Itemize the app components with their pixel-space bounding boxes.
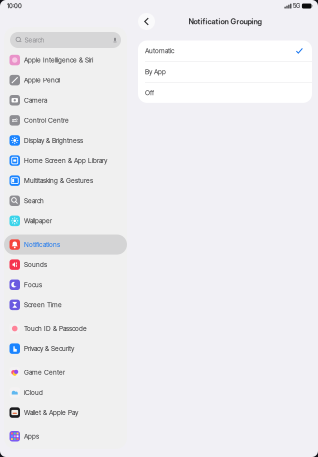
staticText: Game Center: [24, 368, 65, 376]
staticText: Touch ID & Passcode: [24, 324, 87, 333]
button[interactable]: Camera: [4, 90, 127, 110]
button[interactable]: Wallet & Apple Pay: [4, 402, 127, 423]
staticText: Search: [24, 197, 44, 205]
staticText: 5G: [293, 2, 300, 9]
staticText: Multitasking & Gestures: [24, 177, 93, 185]
staticText: Apps: [24, 432, 39, 440]
staticText: iCloud: [24, 388, 43, 396]
button[interactable]: Automatic: [138, 40, 312, 62]
button[interactable]: Wallpaper: [4, 211, 127, 231]
button[interactable]: Off: [138, 83, 312, 103]
button[interactable]: Control Centre: [4, 110, 127, 130]
staticText: Display & Brightness: [24, 136, 83, 144]
button[interactable]: Apple Pencil: [4, 70, 127, 90]
staticText: Automatic: [145, 47, 174, 55]
button[interactable]: Focus: [4, 275, 127, 295]
button[interactable]: Privacy & Security: [4, 339, 127, 359]
staticText: Camera: [24, 96, 47, 104]
button[interactable]: Back: [138, 13, 155, 30]
staticText: Control Centre: [24, 116, 69, 124]
staticText: Sounds: [24, 261, 47, 269]
button[interactable]: Sounds: [4, 255, 127, 275]
button[interactable]: Search: [4, 191, 127, 211]
staticText: Off: [145, 89, 154, 97]
staticText: Wallet & Apple Pay: [24, 408, 78, 417]
button[interactable]: Multitasking & Gestures: [4, 171, 127, 191]
button[interactable]: Game Center: [4, 362, 127, 382]
staticText: Apple Pencil: [24, 76, 60, 84]
button[interactable]: Display & Brightness: [4, 130, 127, 150]
staticText: Wallpaper: [24, 217, 52, 225]
staticText: Home Screen & App Library: [24, 156, 107, 165]
staticText: Screen Time: [24, 301, 62, 309]
staticText: Focus: [24, 281, 42, 289]
button[interactable]: Notifications: [4, 234, 127, 255]
button[interactable]: Apple Intelligence & Siri: [4, 50, 127, 70]
button[interactable]: Screen Time: [4, 295, 127, 315]
staticText: By App: [145, 68, 166, 76]
button[interactable]: Home Screen & App Library: [4, 150, 127, 171]
staticText: Search: [25, 36, 45, 44]
staticText: Apple Intelligence & Siri: [24, 56, 93, 64]
button[interactable]: iCloud: [4, 382, 127, 402]
staticText: Notification Grouping: [188, 17, 261, 26]
staticText: Notifications: [24, 240, 60, 249]
staticText: Privacy & Security: [24, 345, 74, 353]
button[interactable]: By App: [138, 62, 312, 83]
staticText: 10:00: [7, 2, 22, 10]
button[interactable]: Touch ID & Passcode: [4, 318, 127, 339]
button[interactable]: Apps: [4, 426, 127, 446]
